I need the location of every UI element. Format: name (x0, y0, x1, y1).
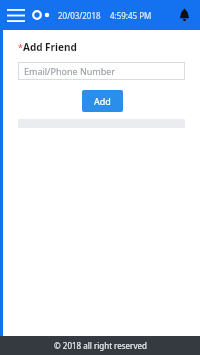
button[interactable]: Notifications (174, 5, 194, 25)
button[interactable]: Add (82, 90, 123, 112)
button[interactable]: Email/Phone Number (18, 62, 185, 80)
staticText: 4:59:45 PM (110, 10, 152, 21)
staticText: © 2018 all right reserved (54, 340, 147, 351)
staticText: Add (94, 95, 111, 107)
staticText: Email/Phone Number (24, 65, 116, 77)
staticText: 20/03/2018 (58, 10, 101, 21)
button[interactable]: Toggle status (30, 5, 52, 25)
staticText: *Add Friend (18, 40, 77, 54)
button[interactable]: Menu (5, 5, 27, 25)
